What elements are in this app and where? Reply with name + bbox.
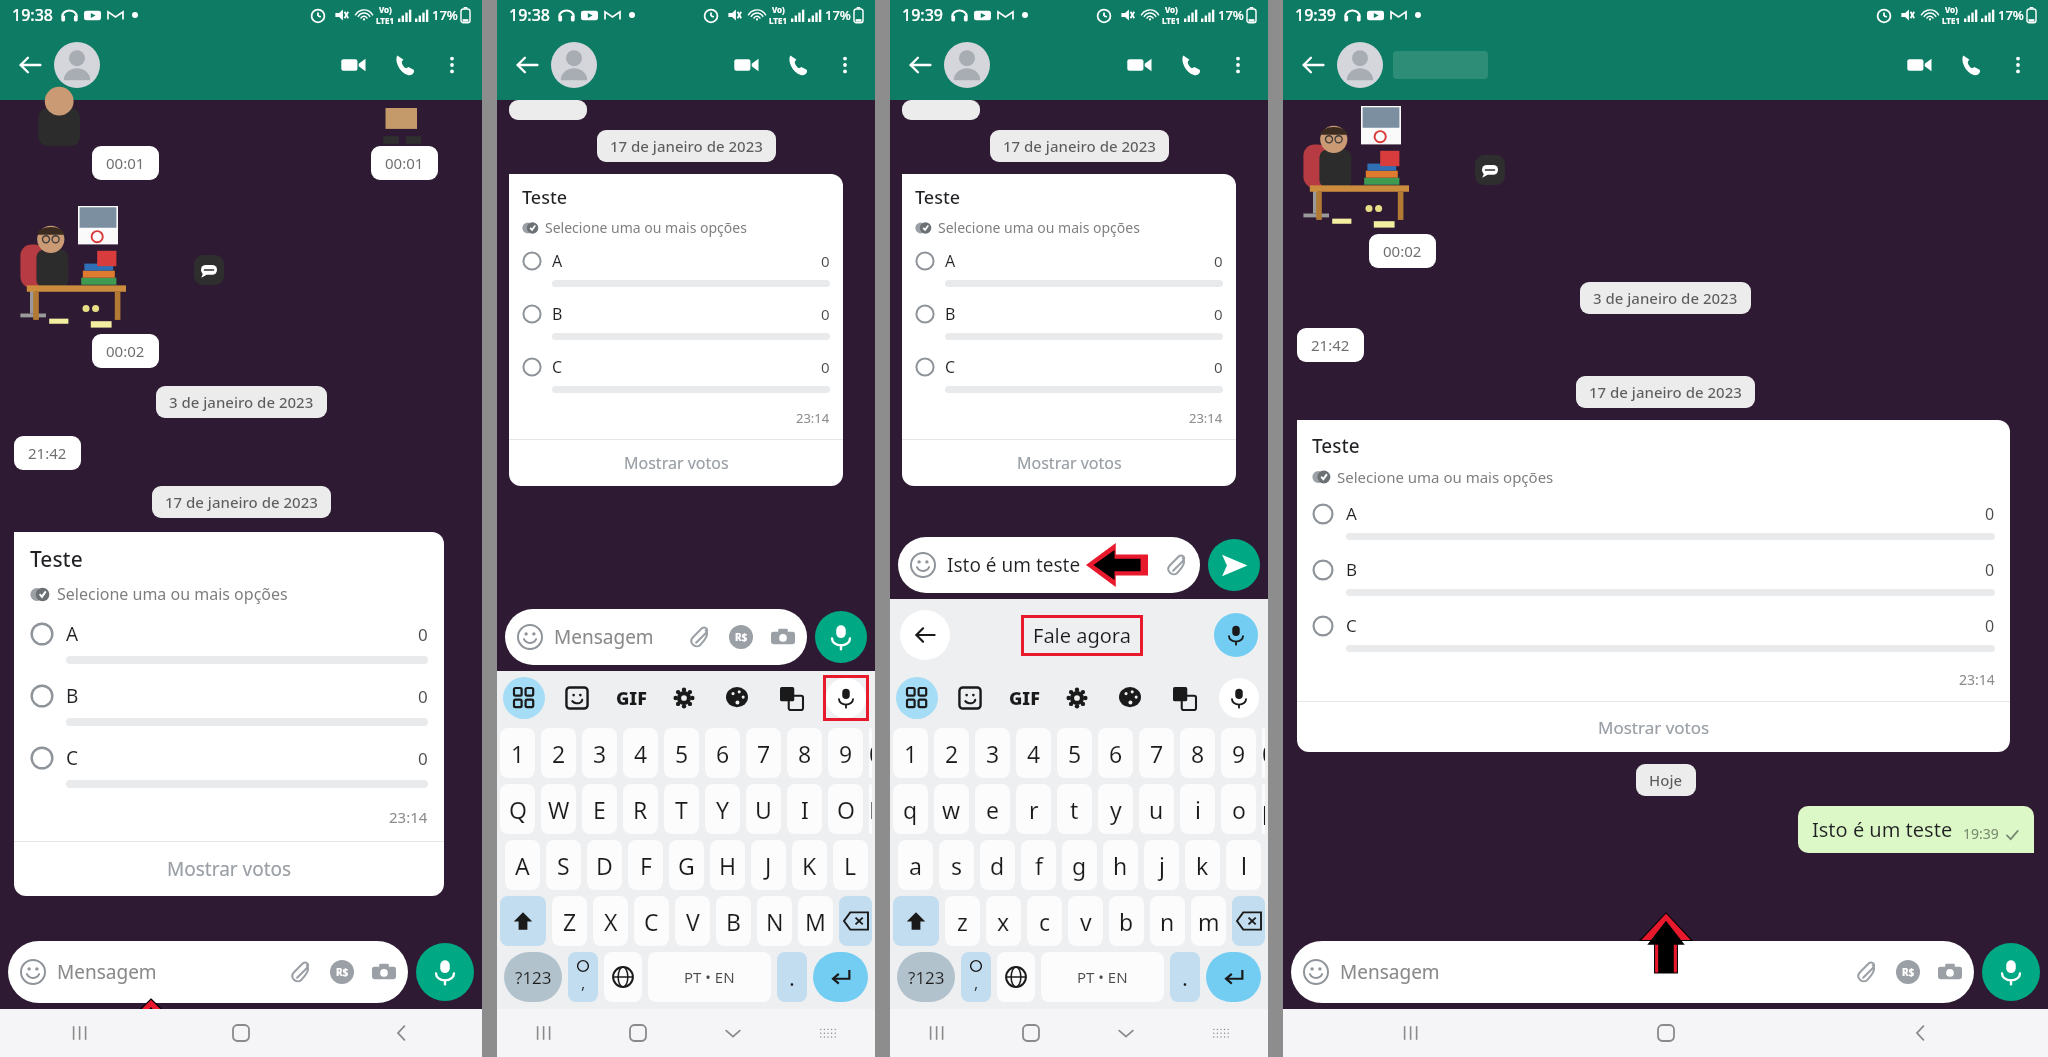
button[interactable] [839,896,872,946]
button[interactable]: Voice message [815,611,867,663]
button[interactable]: Q [500,784,535,834]
button[interactable]: 0 [869,728,872,778]
button[interactable]: More options [1998,45,2038,85]
button[interactable]: Stop voice input [1214,613,1258,657]
button[interactable]: 5 [664,728,699,778]
button[interactable]: Isto é um teste [898,537,1200,593]
button[interactable]: 3 [582,728,617,778]
button[interactable]: Mostrar votos [509,440,843,486]
button[interactable]: 5 [1057,728,1092,778]
button[interactable]: More options [1218,45,1258,85]
button[interactable]: Enter [1206,952,1261,1002]
button[interactable]: 2 [541,728,576,778]
button[interactable]: P [869,784,872,834]
button[interactable]: ?123 [504,952,562,1002]
button[interactable]: Y [705,784,740,834]
button[interactable]: 6 [705,728,740,778]
button[interactable]: Voice message [416,943,474,1001]
button[interactable]: n [1150,896,1185,946]
button[interactable]: w [934,784,969,834]
button[interactable]: Mostrar votos [14,842,444,896]
button[interactable]: . [777,952,807,1002]
button[interactable]: Attach [288,960,312,984]
button[interactable]: Mensagem [1291,941,1974,1003]
button[interactable]: T [664,784,699,834]
button[interactable]: r [1016,784,1051,834]
button[interactable]: 4 [1016,728,1051,778]
button[interactable]: Themes [1109,677,1151,719]
button[interactable]: Home [984,1009,1078,1057]
button[interactable]: 6 [1098,728,1133,778]
button[interactable]: . [1170,952,1200,1002]
button[interactable]: Back [1293,45,1333,85]
button[interactable]: Hide keyboard [685,1009,780,1057]
button[interactable]: Stickers [556,677,598,719]
button[interactable]: Mostrar votos [1297,702,2010,752]
button[interactable]: Voice input [1219,678,1259,718]
button[interactable]: More options [825,45,865,85]
button[interactable]: A [30,621,428,647]
button[interactable]: A [522,250,830,272]
button[interactable]: Camera [771,625,795,649]
button[interactable]: , [961,952,991,1002]
button[interactable]: Voice call [1950,44,1992,86]
button[interactable]: F [628,840,663,890]
button[interactable]: Back [10,45,50,85]
button[interactable]: C [30,745,428,771]
button[interactable]: e [975,784,1010,834]
button[interactable]: ?123 [897,952,955,1002]
button[interactable]: Settings [663,677,705,719]
button[interactable]: J [751,840,786,890]
button[interactable]: R [623,784,658,834]
button[interactable]: y [1098,784,1133,834]
button[interactable]: Recents [0,1009,160,1057]
button[interactable]: Contact photo [1337,42,1383,88]
button[interactable]: Isto é um teste [1798,806,2034,853]
button[interactable]: B [915,303,1223,325]
button[interactable]: 7 [746,728,781,778]
button[interactable]: Contact photo [944,42,990,88]
button[interactable]: Stickers [949,677,991,719]
button[interactable]: Mensagem [8,941,408,1003]
button[interactable]: Contact photo [551,42,597,88]
button[interactable]: z [945,896,980,946]
button[interactable]: u [1139,784,1174,834]
button[interactable]: Settings [1056,677,1098,719]
button[interactable]: , [568,952,598,1002]
button[interactable]: V [675,896,710,946]
button[interactable]: Camera [372,960,396,984]
button[interactable]: A [915,250,1223,272]
button[interactable]: Send [1208,539,1260,591]
button[interactable]: Payment [330,960,354,984]
button[interactable]: a [898,840,933,890]
button[interactable]: A [1312,502,1995,525]
button[interactable]: Back [321,1009,482,1057]
button[interactable]: i [1180,784,1215,834]
button[interactable]: PT • EN [648,952,771,1002]
button[interactable] [997,952,1035,1002]
button[interactable]: Home [160,1009,321,1057]
button[interactable]: Translate [770,677,812,719]
button[interactable] [604,952,642,1002]
button[interactable]: g [1062,840,1097,890]
button[interactable]: 9 [1221,728,1256,778]
button[interactable]: Voice input [826,678,866,718]
button[interactable]: Mensagem [505,609,807,665]
button[interactable]: 9 [828,728,863,778]
button[interactable]: C [915,356,1223,378]
button[interactable] [1232,896,1265,946]
button[interactable]: 1 [893,728,928,778]
button[interactable]: 1 [500,728,535,778]
button[interactable]: Voice call [384,44,426,86]
button[interactable]: D [587,840,622,890]
button[interactable]: Keyboard layout [1173,1009,1268,1057]
button[interactable]: Back [900,610,950,660]
button[interactable]: 8 [1180,728,1215,778]
button[interactable]: Toolbox [503,677,545,719]
button[interactable]: Home [1538,1009,1793,1057]
button[interactable] [893,896,939,946]
button[interactable]: X [593,896,628,946]
button[interactable]: I [787,784,822,834]
button[interactable]: Contact photo [54,42,100,88]
button[interactable]: Recents [497,1009,591,1057]
